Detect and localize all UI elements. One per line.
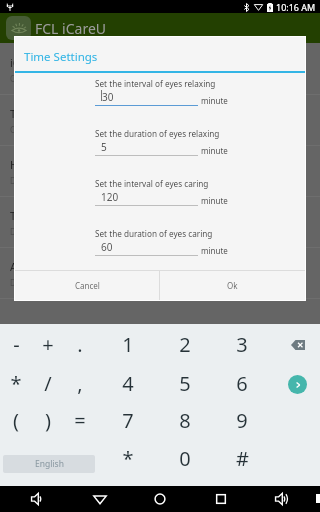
staticText: 3	[236, 331, 248, 358]
button[interactable]: App icon	[6, 16, 31, 40]
button[interactable]: Home	[145, 488, 175, 510]
staticText: Ok	[227, 280, 238, 291]
staticText: 0	[179, 445, 191, 472]
staticText: Time Settings	[24, 49, 98, 65]
button[interactable]: English	[3, 455, 95, 473]
button[interactable]: /	[26, 365, 70, 401]
staticText: )	[45, 407, 51, 434]
staticText: .	[77, 331, 83, 358]
staticText: 2	[179, 331, 191, 358]
staticText: 10:16 AM	[276, 1, 316, 13]
staticText: *	[10, 370, 22, 397]
staticText: Open or close service	[10, 73, 91, 84]
staticText: FCL iCareU	[35, 19, 107, 38]
button[interactable]: 9	[220, 402, 264, 438]
button[interactable]: *	[0, 365, 38, 401]
staticText: 9	[236, 407, 248, 434]
staticText: 60	[101, 240, 113, 254]
staticText: 1	[122, 331, 134, 358]
staticText: /	[44, 370, 52, 397]
button[interactable]: .	[58, 326, 102, 362]
staticText: iCareU	[10, 55, 45, 70]
staticText: 6	[236, 370, 248, 397]
staticText: Set the interval of eyes caring	[95, 178, 209, 189]
staticText: (	[13, 407, 19, 434]
button[interactable]: 7	[106, 402, 150, 438]
button[interactable]: 1	[106, 326, 150, 362]
staticText: #	[236, 445, 249, 472]
button[interactable]: Volume up	[267, 488, 297, 510]
button[interactable]: ,	[58, 365, 102, 401]
staticText: 8	[179, 407, 191, 434]
staticText: 7	[122, 407, 134, 434]
staticText: 4	[122, 370, 134, 397]
staticText: -	[13, 331, 20, 358]
button[interactable]: 3	[220, 326, 264, 362]
staticText: 30	[102, 90, 114, 104]
button[interactable]: Ok	[160, 271, 305, 300]
staticText: English	[35, 458, 64, 470]
staticText: 120	[101, 190, 119, 204]
button[interactable]: *	[106, 440, 150, 476]
staticText: Set the duration of eyes relaxing	[95, 128, 220, 139]
staticText: 5	[101, 140, 107, 154]
button[interactable]: +	[26, 326, 70, 362]
staticText: Theme	[10, 208, 46, 223]
staticText: Set the interval of eyes relaxing	[95, 78, 216, 89]
button[interactable]: Enter	[288, 375, 307, 394]
staticText: minute	[201, 245, 228, 256]
button[interactable]: 4	[106, 365, 150, 401]
staticText: Cancel	[75, 280, 100, 291]
staticText: +	[42, 331, 54, 358]
button[interactable]: 5	[163, 365, 207, 401]
button[interactable]: (	[0, 402, 38, 438]
button[interactable]: 0	[163, 440, 207, 476]
button[interactable]: #	[220, 440, 264, 476]
staticText: ,	[77, 370, 83, 397]
button[interactable]: )	[26, 402, 70, 438]
button[interactable]: Volume down	[23, 488, 53, 510]
button[interactable]: Recents	[206, 488, 236, 510]
staticText: =	[74, 407, 86, 434]
button[interactable]: 8	[163, 402, 207, 438]
staticText: 5	[179, 370, 191, 397]
staticText: minute	[201, 95, 228, 106]
button[interactable]: 2	[163, 326, 207, 362]
staticText: Configure the times	[10, 124, 85, 135]
button[interactable]: =	[58, 402, 102, 438]
button[interactable]: Cancel	[15, 271, 159, 300]
button[interactable]: Back	[85, 488, 115, 510]
button[interactable]: -	[0, 326, 38, 362]
staticText: Description for the app	[10, 175, 97, 186]
staticText: Developer information	[10, 277, 96, 288]
staticText: Set the duration of eyes caring	[95, 228, 213, 239]
button[interactable]: Backspace	[283, 327, 313, 363]
staticText: How to use	[10, 157, 68, 172]
staticText: Display the color style	[10, 226, 93, 237]
staticText: minute	[201, 145, 228, 156]
staticText: *	[122, 445, 134, 472]
staticText: Time Settings	[10, 106, 81, 121]
staticText: About	[10, 259, 42, 274]
staticText: minute	[201, 195, 228, 206]
button[interactable]: 6	[220, 365, 264, 401]
